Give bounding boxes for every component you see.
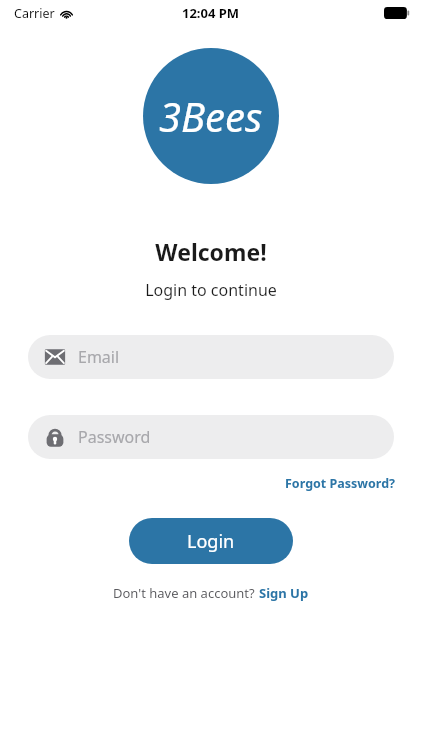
staticText: Password (78, 426, 151, 448)
button[interactable]: Forgot Password? (279, 471, 402, 496)
button[interactable]: Login (129, 518, 293, 564)
staticText: Login (187, 529, 235, 554)
button[interactable]: Email (28, 335, 394, 379)
staticText: 3Bees (159, 89, 263, 143)
staticText: Welcome! (0, 236, 422, 267)
staticText: Don't have an account? (113, 584, 259, 602)
staticText: 12:04 PM (182, 4, 240, 22)
staticText: Email (78, 346, 120, 368)
staticText: Carrier (14, 5, 55, 22)
staticText: Sign Up (259, 584, 309, 602)
staticText: Login to continue (0, 279, 422, 301)
staticText: Forgot Password? (285, 475, 396, 492)
button[interactable]: Password (28, 415, 394, 459)
button[interactable]: Sign Up (259, 584, 309, 602)
